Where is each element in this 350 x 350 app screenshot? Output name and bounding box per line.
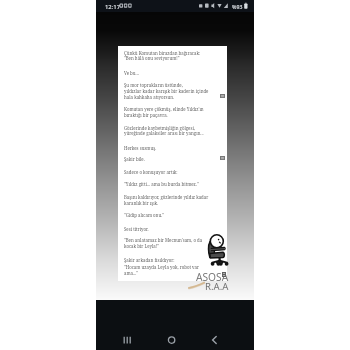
button[interactable]: Back <box>209 333 221 345</box>
staticText: Şu mor toprakların üstünde, <box>124 82 183 88</box>
staticText: yıldızlar kadar karışık bir kaderin için… <box>124 88 209 94</box>
staticText: bıraktığı bir paçavra. <box>124 112 168 118</box>
staticText: "Ben hâlâ onu seviyorum!" <box>124 55 180 61</box>
button[interactable] <box>118 46 227 281</box>
staticText: karanlık bir ışık. <box>124 200 159 206</box>
staticText: hala kahkaha atıyorsun. <box>124 94 175 100</box>
staticText: Sesi titriyor. <box>124 226 149 232</box>
staticText: %93 <box>232 3 243 10</box>
staticText: Çünkü Komutan birazdan bağıracak: <box>124 50 201 56</box>
staticText: yüreğinde galaksiler arası bir yangın... <box>124 130 204 136</box>
staticText: "Ben anlatamaz bir Mecnun'sam, o da <box>124 237 203 243</box>
staticText: Komutan yere çökmüş, elinde Yıldız'ın <box>124 106 204 112</box>
staticText: Şakir bile. <box>124 156 145 162</box>
button[interactable]: Home <box>166 333 178 345</box>
staticText: ama..." <box>124 270 139 276</box>
staticText: 12:17 <box>105 3 121 11</box>
staticText: Ve bu... <box>124 70 139 76</box>
staticText: ASOSA <box>196 270 229 284</box>
staticText: "Hocam uzayda Leyla yok, robot var <box>124 264 200 270</box>
staticText: Sadece o konuşuyor artık: <box>124 169 178 175</box>
staticText: Şakir arkadan fısıldıyor: <box>124 257 175 263</box>
staticText: "Yıldız gitti... ama bu burda bitmez." <box>124 181 199 187</box>
staticText: Herkes susmuş. <box>124 145 157 151</box>
staticText: "Gidip alıcam onu." <box>124 212 165 218</box>
staticText: R.A.A <box>205 280 229 293</box>
staticText: kocak bir Leyla!" <box>124 243 159 249</box>
button[interactable]: Recent apps <box>122 333 134 345</box>
staticText: Başını kaldırıyor, gözlerinde yıldız kad… <box>124 194 209 200</box>
staticText: Gözlerinde kaybetmişliğin gölgesi, <box>124 125 195 131</box>
